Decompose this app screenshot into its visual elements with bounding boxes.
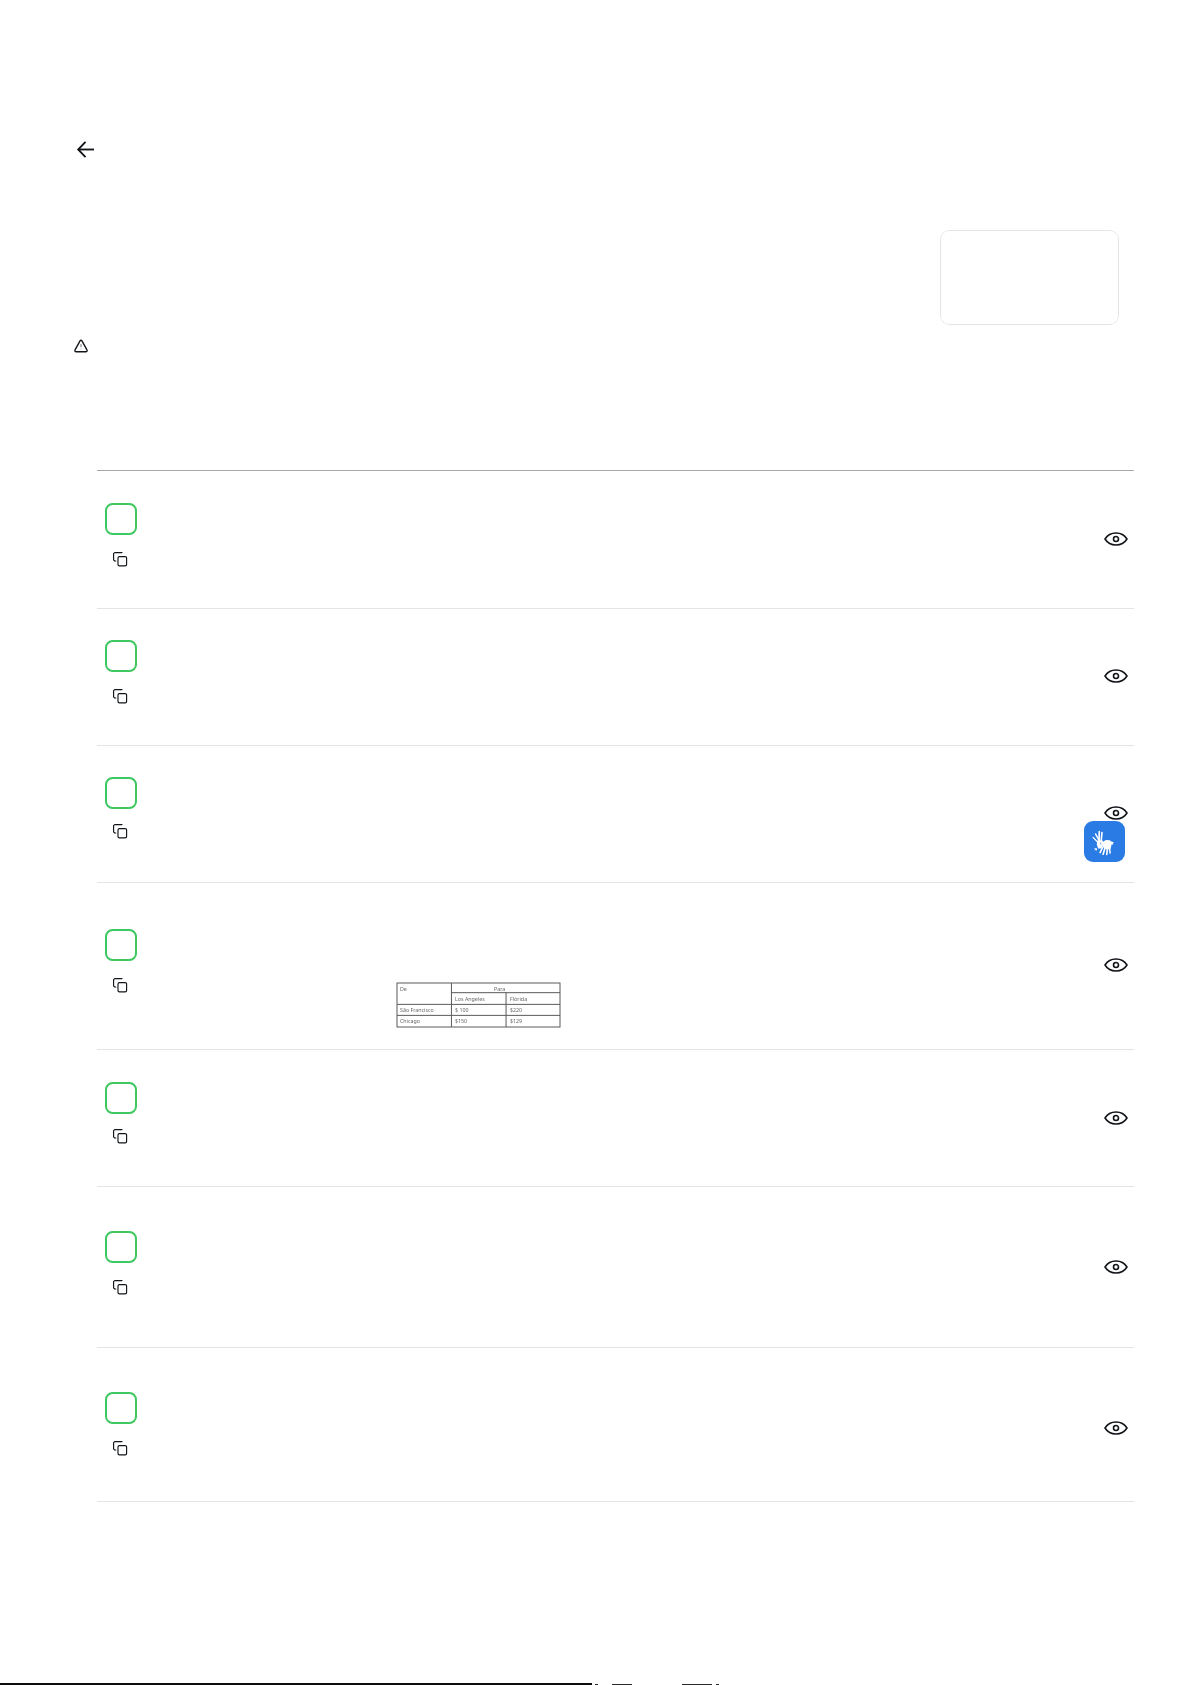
staticText: De (400, 985, 407, 992)
button[interactable]: Checkbox (105, 1082, 137, 1114)
staticText: Chicago (400, 1017, 420, 1024)
button[interactable]: Copy (105, 1122, 133, 1150)
button[interactable]: Show (1102, 662, 1130, 690)
button[interactable]: Show (1102, 799, 1130, 827)
button[interactable]: Sign language (1084, 821, 1125, 862)
staticText: $ 100 (455, 1006, 469, 1013)
button[interactable] (940, 230, 1119, 325)
button[interactable]: Copy (105, 817, 133, 845)
button[interactable]: Show (1102, 1253, 1130, 1281)
staticText: $150 (455, 1017, 468, 1024)
staticText: São Francisco (400, 1006, 434, 1013)
staticText: $220 (510, 1006, 523, 1013)
staticText: Los Angeles (455, 995, 485, 1002)
button[interactable]: Show (1102, 951, 1130, 979)
button[interactable]: Copy (105, 1273, 133, 1301)
button[interactable]: Show (1102, 1104, 1130, 1132)
staticText: Para (494, 985, 506, 992)
button[interactable]: Checkbox (105, 777, 137, 809)
button[interactable]: Show (1102, 525, 1130, 553)
button[interactable]: Checkbox (105, 503, 137, 535)
staticText: $129 (510, 1017, 523, 1024)
button[interactable]: Copy (105, 682, 133, 710)
button[interactable]: Copy (105, 545, 133, 573)
button[interactable]: Checkbox (105, 1392, 137, 1424)
button[interactable]: Copy (105, 1434, 133, 1462)
button[interactable]: Copy (105, 971, 133, 999)
button[interactable]: Checkbox (105, 640, 137, 672)
staticText: Flórida (510, 995, 528, 1002)
button[interactable]: Warning (66, 331, 95, 360)
button[interactable]: Checkbox (105, 1231, 137, 1263)
button[interactable]: Checkbox (105, 929, 137, 961)
button[interactable]: Back (69, 133, 102, 166)
button[interactable]: Show (1102, 1414, 1130, 1442)
